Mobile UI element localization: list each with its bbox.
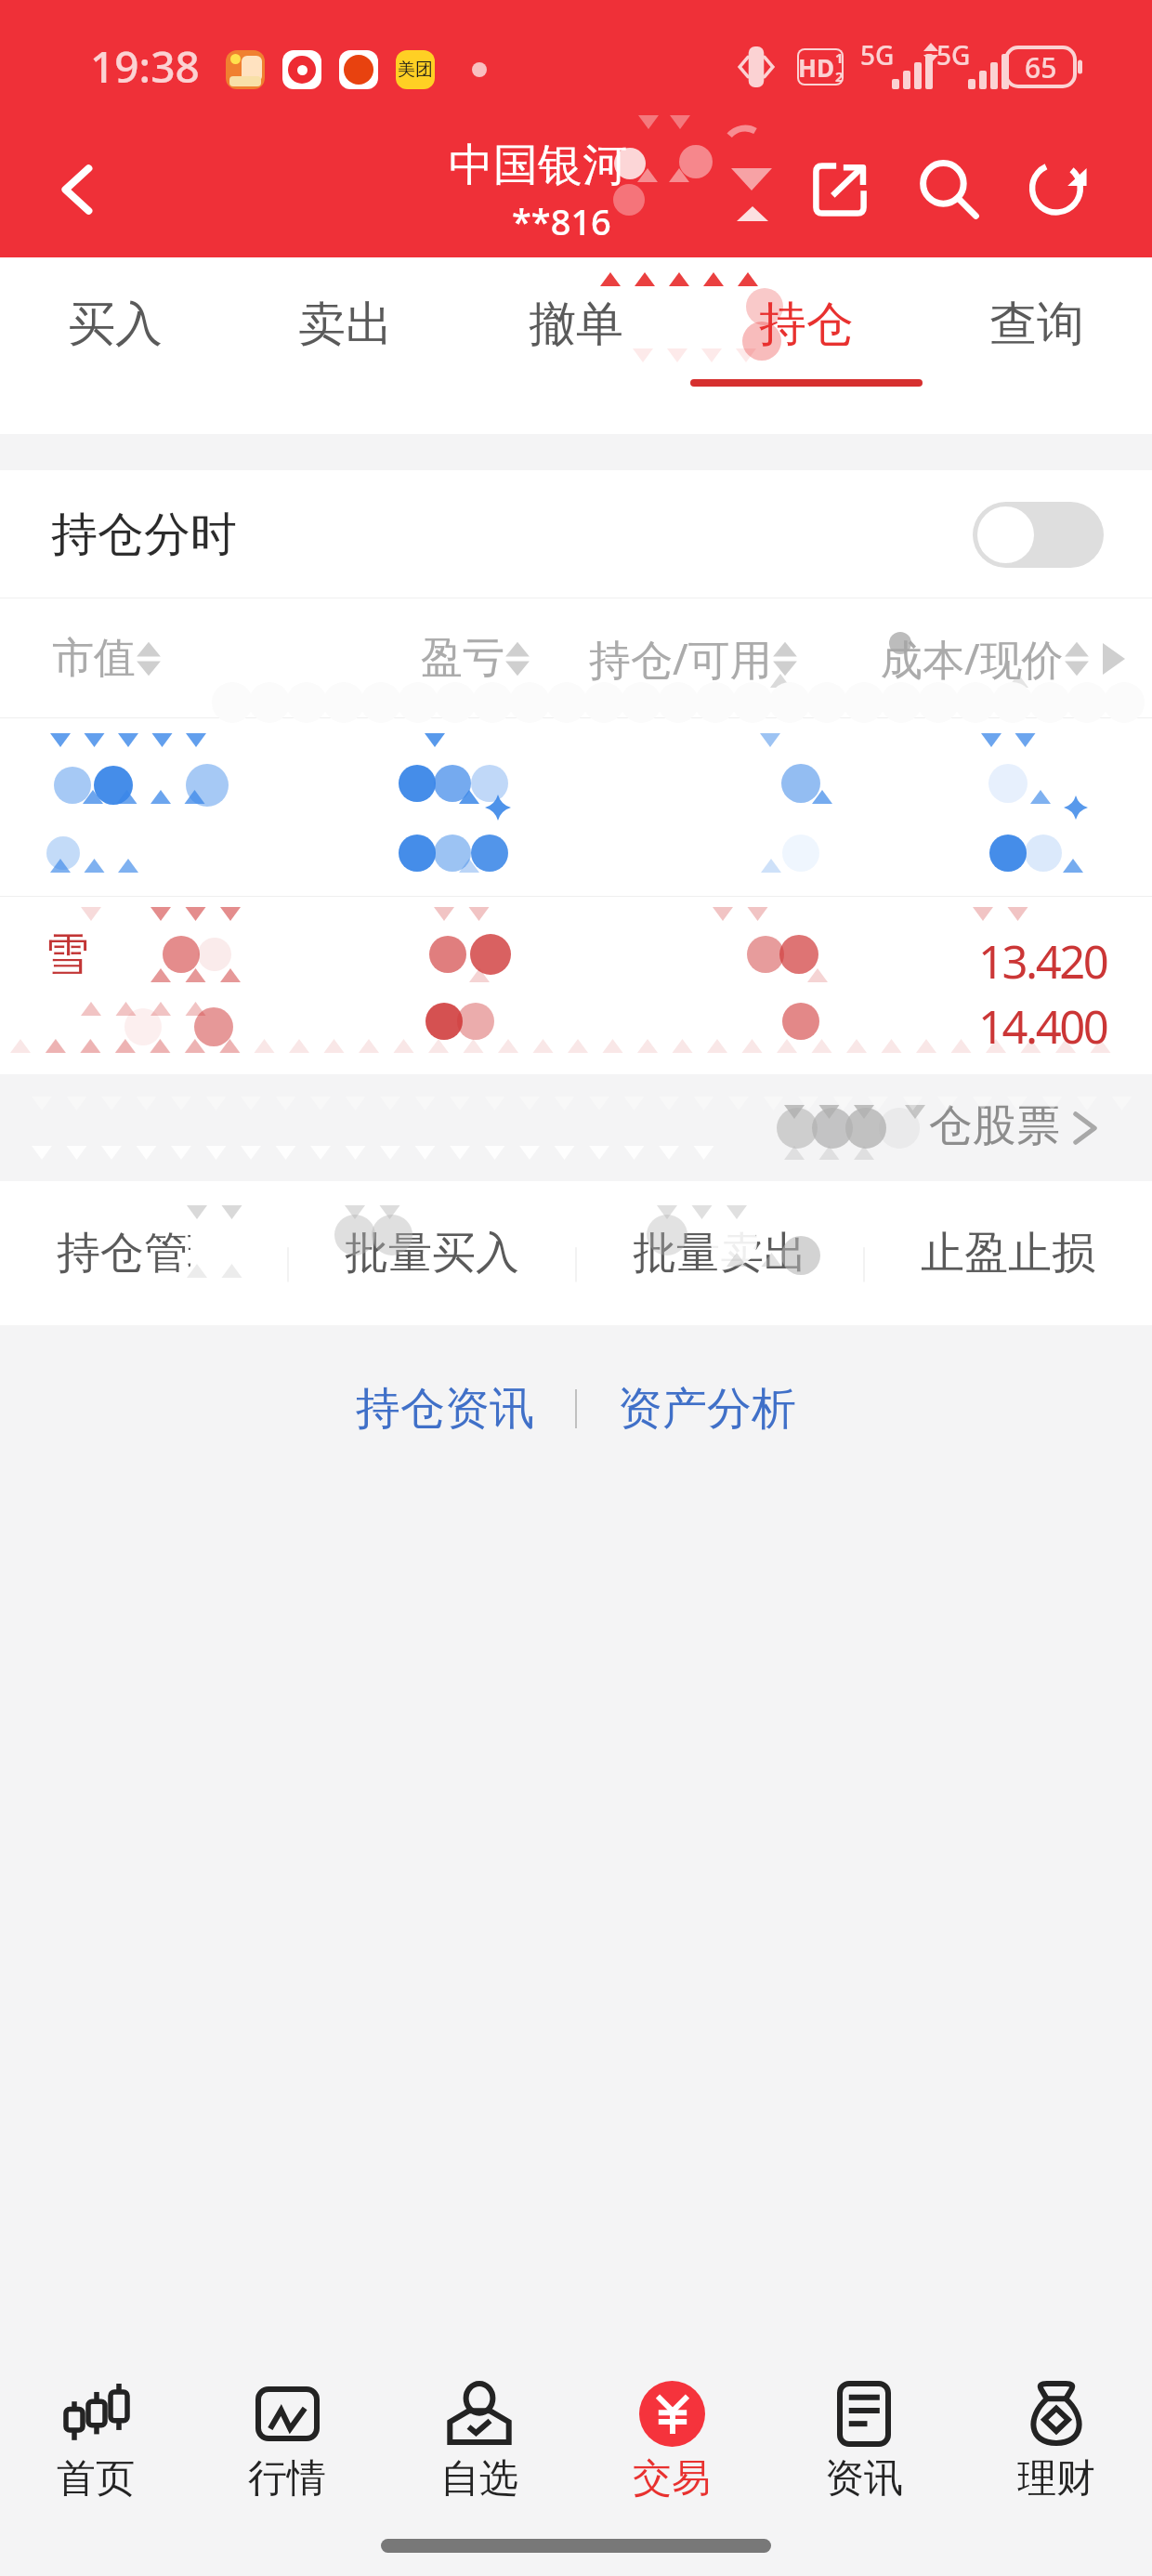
staticText: 19:38 xyxy=(90,37,200,96)
staticText: 批量卖出 xyxy=(633,1226,807,1281)
button[interactable]: 止盈止损 xyxy=(864,1181,1152,1325)
staticText: 理财 xyxy=(1017,2454,1095,2504)
button[interactable]: 撤单 xyxy=(461,257,691,434)
staticText: 仓股票 xyxy=(929,1098,1060,1153)
button[interactable]: 雪 xyxy=(0,897,1152,1074)
button[interactable]: 持仓分时 toggle xyxy=(973,502,1104,568)
button[interactable]: Share xyxy=(795,145,884,234)
staticText: 首页 xyxy=(57,2454,135,2504)
button[interactable] xyxy=(0,718,1152,896)
button[interactable]: 交易 xyxy=(575,2305,767,2576)
staticText: 卖出 xyxy=(298,295,393,354)
button[interactable]: 盈亏 xyxy=(421,632,530,685)
staticText: 止盈止损 xyxy=(921,1226,1095,1281)
staticText: 持仓/可用 xyxy=(589,630,772,687)
staticText: 资讯 xyxy=(825,2454,903,2504)
other: More columns xyxy=(1101,643,1125,675)
staticText: 持仓资讯 xyxy=(356,1381,534,1437)
button[interactable]: 买入 xyxy=(0,257,230,434)
staticText: 成本/现价 xyxy=(881,630,1064,687)
button[interactable]: 批量买入 xyxy=(288,1181,576,1325)
button[interactable]: 持仓管理 xyxy=(0,1181,288,1325)
staticText: 买入 xyxy=(68,295,163,354)
staticText: 资产分析 xyxy=(618,1381,796,1437)
staticText: 持仓管理 xyxy=(57,1226,231,1281)
button[interactable]: 批量卖出 xyxy=(576,1181,864,1325)
staticText: 14.400 xyxy=(978,995,1107,1058)
button[interactable]: 持仓资讯 xyxy=(350,1372,540,1446)
staticText: 1 xyxy=(835,48,844,67)
staticText: 美团 xyxy=(398,59,433,81)
button[interactable]: 成本/现价 xyxy=(881,630,1125,687)
button[interactable]: 持仓/可用 xyxy=(589,630,798,687)
staticText: 65 xyxy=(1025,48,1057,86)
button[interactable]: 行情 xyxy=(191,2305,383,2576)
staticText: 交易 xyxy=(633,2454,711,2504)
button[interactable]: 首页 xyxy=(0,2305,191,2576)
staticText: **816 xyxy=(512,197,611,245)
button[interactable]: Refresh xyxy=(1015,145,1105,234)
staticText: 撤单 xyxy=(529,295,623,354)
staticText: 查询 xyxy=(989,295,1084,354)
staticText: 5G xyxy=(860,37,895,72)
button[interactable]: 市值 xyxy=(52,632,162,685)
button[interactable]: 理财 xyxy=(960,2305,1152,2576)
staticText: 持仓 xyxy=(759,295,854,354)
button[interactable]: 持仓 xyxy=(691,257,922,434)
button[interactable]: Back xyxy=(28,138,130,241)
staticText: 批量买入 xyxy=(345,1226,519,1281)
staticText: HD xyxy=(798,51,834,84)
staticText: 雪 xyxy=(45,927,89,982)
button[interactable]: Search xyxy=(905,145,994,234)
staticText: 5G xyxy=(936,37,971,72)
staticText: 盈亏 xyxy=(421,632,504,685)
staticText: 市值 xyxy=(52,632,136,685)
staticText: 自选 xyxy=(440,2454,518,2504)
staticText: 行情 xyxy=(248,2454,326,2504)
staticText: 持仓分时 xyxy=(51,506,237,564)
staticText: 中国银河 xyxy=(449,138,627,193)
button[interactable]: 仓股票 xyxy=(0,1074,1152,1181)
button[interactable]: 卖出 xyxy=(230,257,461,434)
button[interactable]: 查询 xyxy=(922,257,1152,434)
button[interactable]: 自选 xyxy=(383,2305,575,2576)
staticText: 2 xyxy=(835,67,844,85)
button[interactable]: 资讯 xyxy=(767,2305,960,2576)
button[interactable]: 资产分析 xyxy=(612,1372,802,1446)
staticText: 13.420 xyxy=(978,930,1107,992)
